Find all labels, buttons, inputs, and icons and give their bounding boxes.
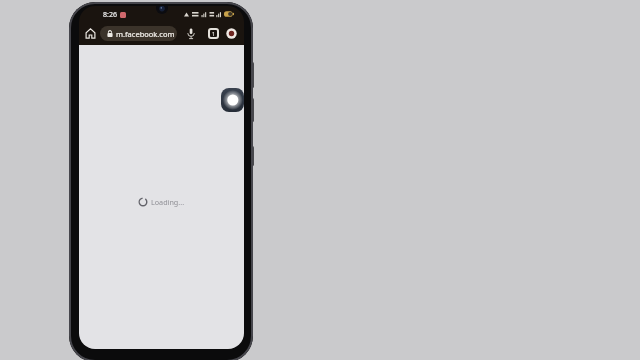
button[interactable]: m.facebook.com (100, 26, 177, 41)
button[interactable] (226, 28, 237, 39)
staticText: m.facebook.com (116, 29, 175, 39)
button[interactable] (187, 28, 195, 40)
button[interactable] (85, 28, 96, 39)
button[interactable] (221, 88, 244, 112)
button[interactable]: 1 (208, 28, 219, 39)
staticText: Loading... (151, 197, 185, 207)
staticText: 1 (212, 30, 216, 37)
staticText: 8:26 (103, 10, 117, 20)
